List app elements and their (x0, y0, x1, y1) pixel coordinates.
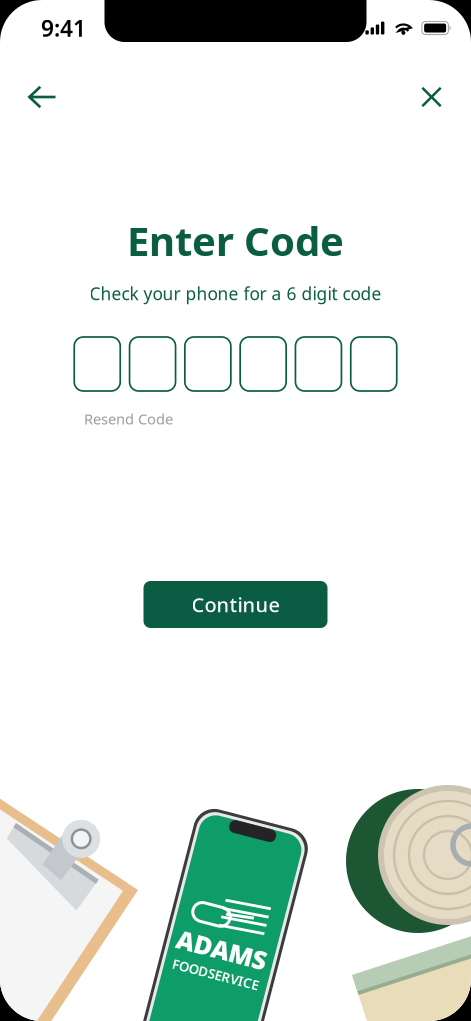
staticText: Resend Code (84, 409, 173, 428)
staticText: Enter Code (127, 214, 344, 267)
staticText: FOODSERVICE (180, 967, 269, 984)
staticText: ADAMS (178, 933, 271, 967)
button[interactable]: Close (407, 73, 455, 121)
button[interactable]: Resend Code (84, 409, 173, 428)
staticText: Check your phone for a 6 digit code (89, 282, 381, 305)
staticText: Continue (191, 591, 279, 618)
button[interactable]: Back (18, 73, 66, 121)
staticText: 9:41 (41, 13, 86, 43)
button[interactable]: Continue (143, 581, 327, 628)
